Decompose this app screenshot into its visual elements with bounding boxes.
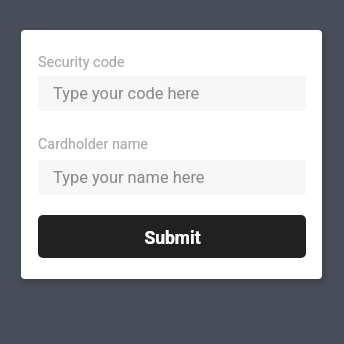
- staticText: Cardholder name: [38, 136, 148, 153]
- staticText: Submit: [144, 228, 201, 249]
- button[interactable]: Submit: [38, 215, 306, 258]
- button[interactable]: Type your code here: [38, 76, 306, 111]
- staticText: Security code: [38, 54, 125, 71]
- staticText: Type your name here: [53, 168, 205, 187]
- button[interactable]: Type your name here: [38, 160, 306, 195]
- staticText: Type your code here: [53, 84, 200, 103]
